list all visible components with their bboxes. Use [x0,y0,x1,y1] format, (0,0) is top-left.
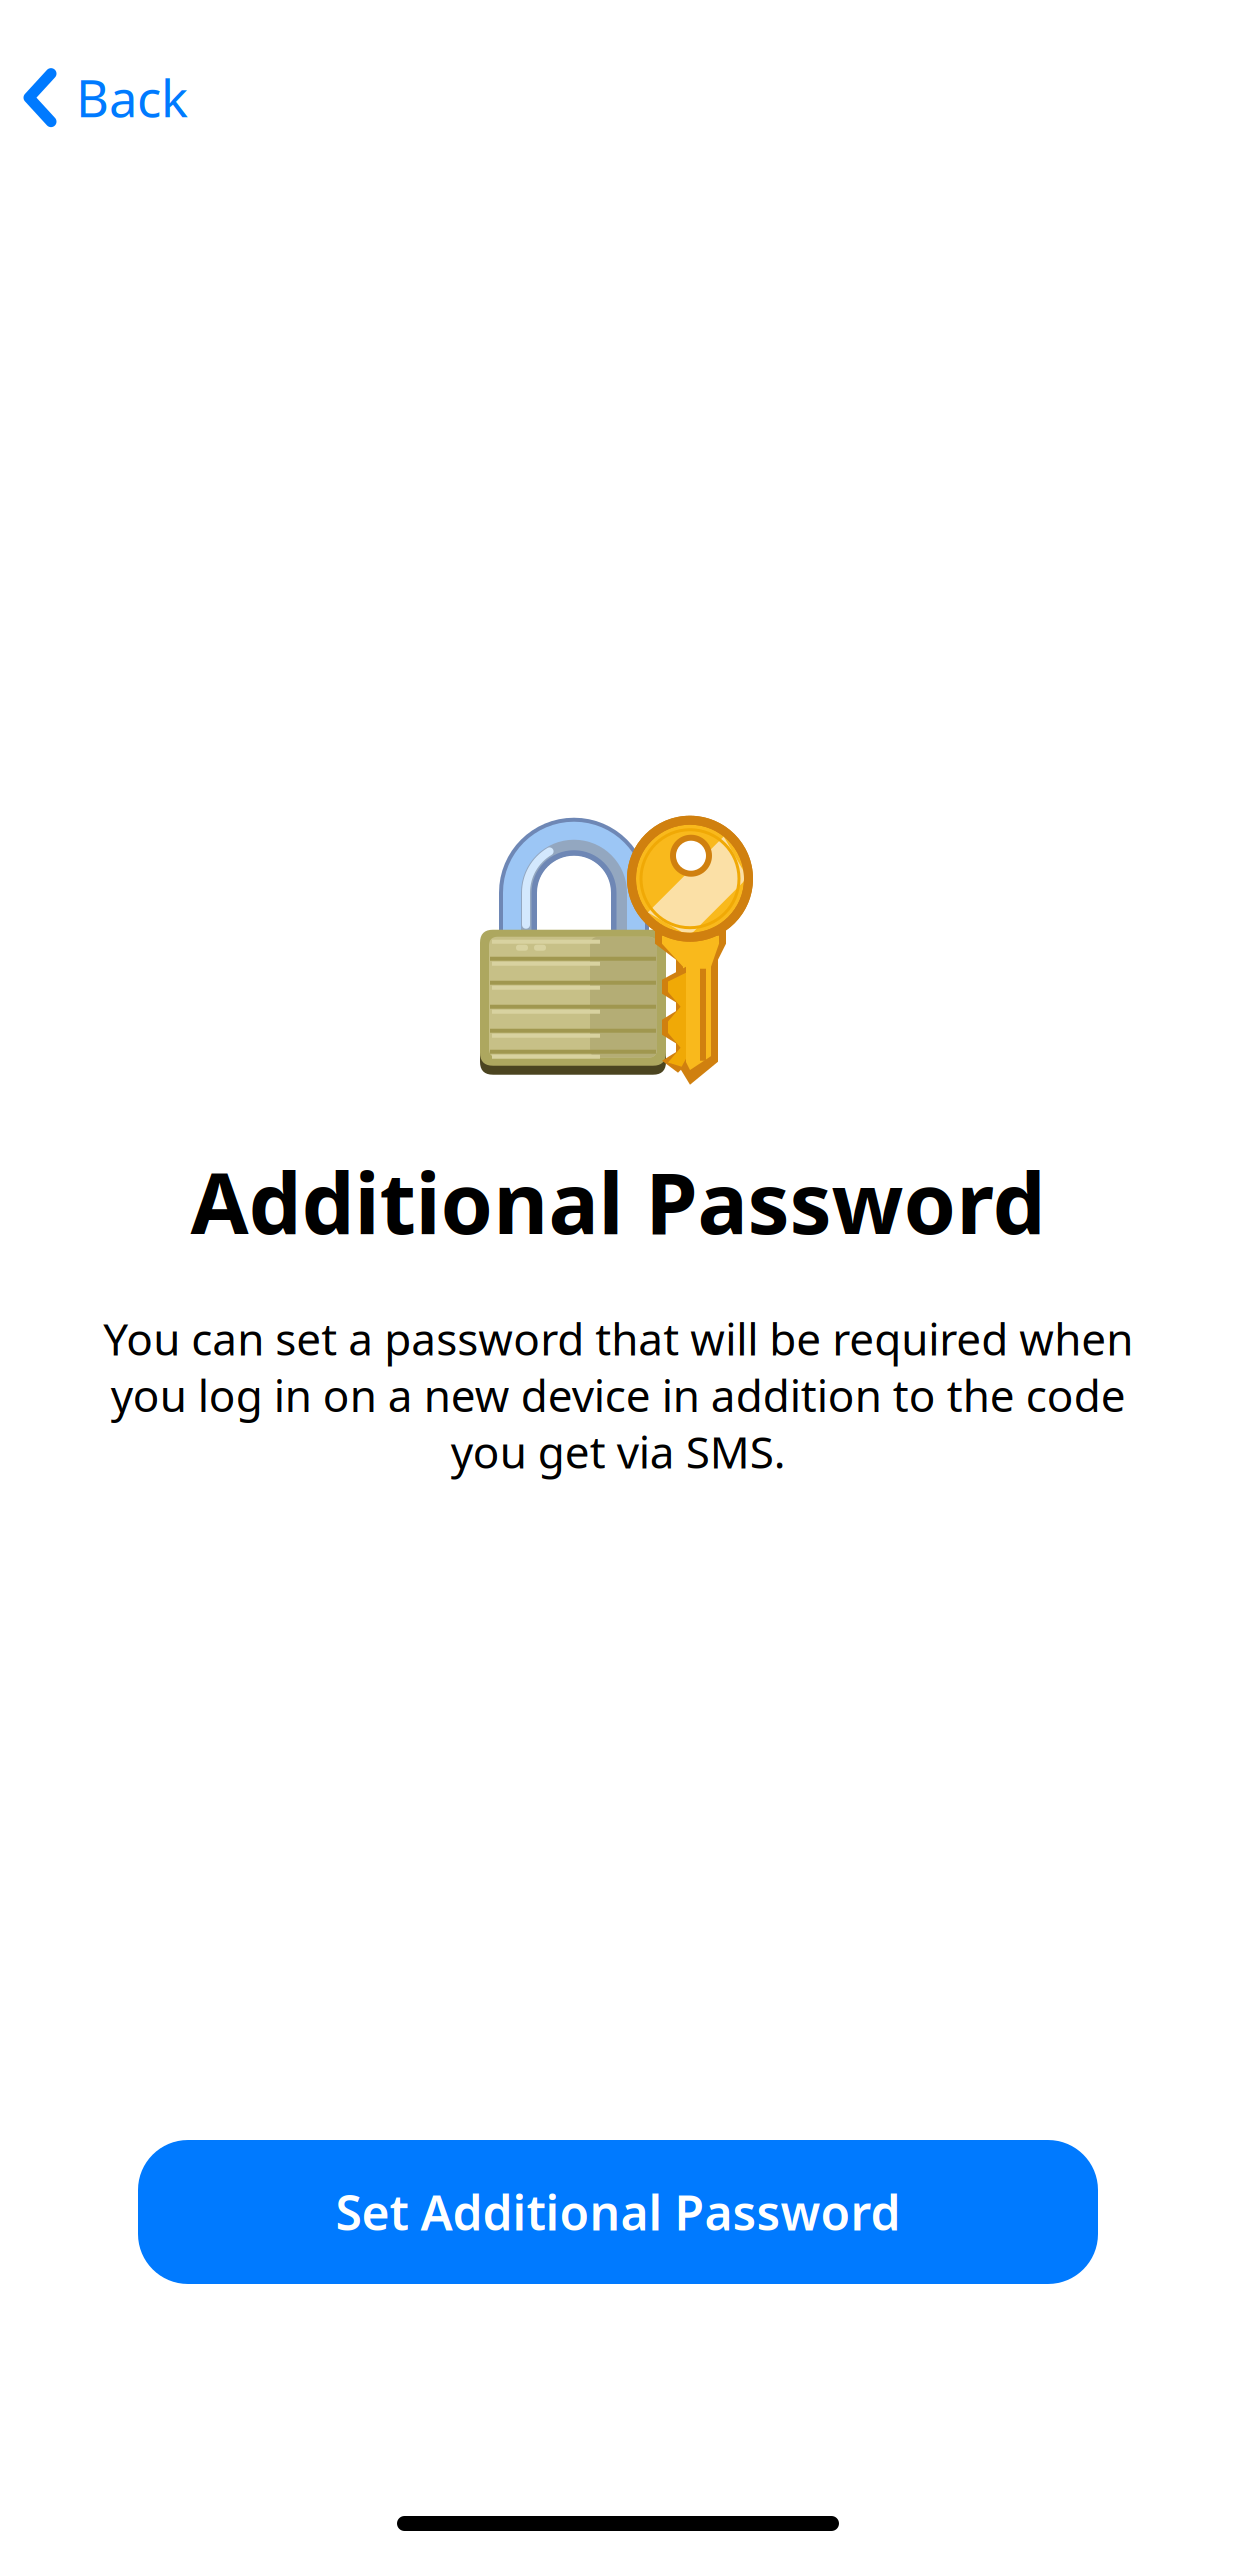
staticText: Additional Password [190,1146,1045,1257]
staticText: You can set a password that will be requ… [103,1309,1133,1481]
button[interactable]: Set Additional Password [138,2140,1098,2284]
button[interactable]: Back [0,44,212,151]
staticText: Back [76,64,188,131]
staticText: Set Additional Password [335,2180,900,2244]
